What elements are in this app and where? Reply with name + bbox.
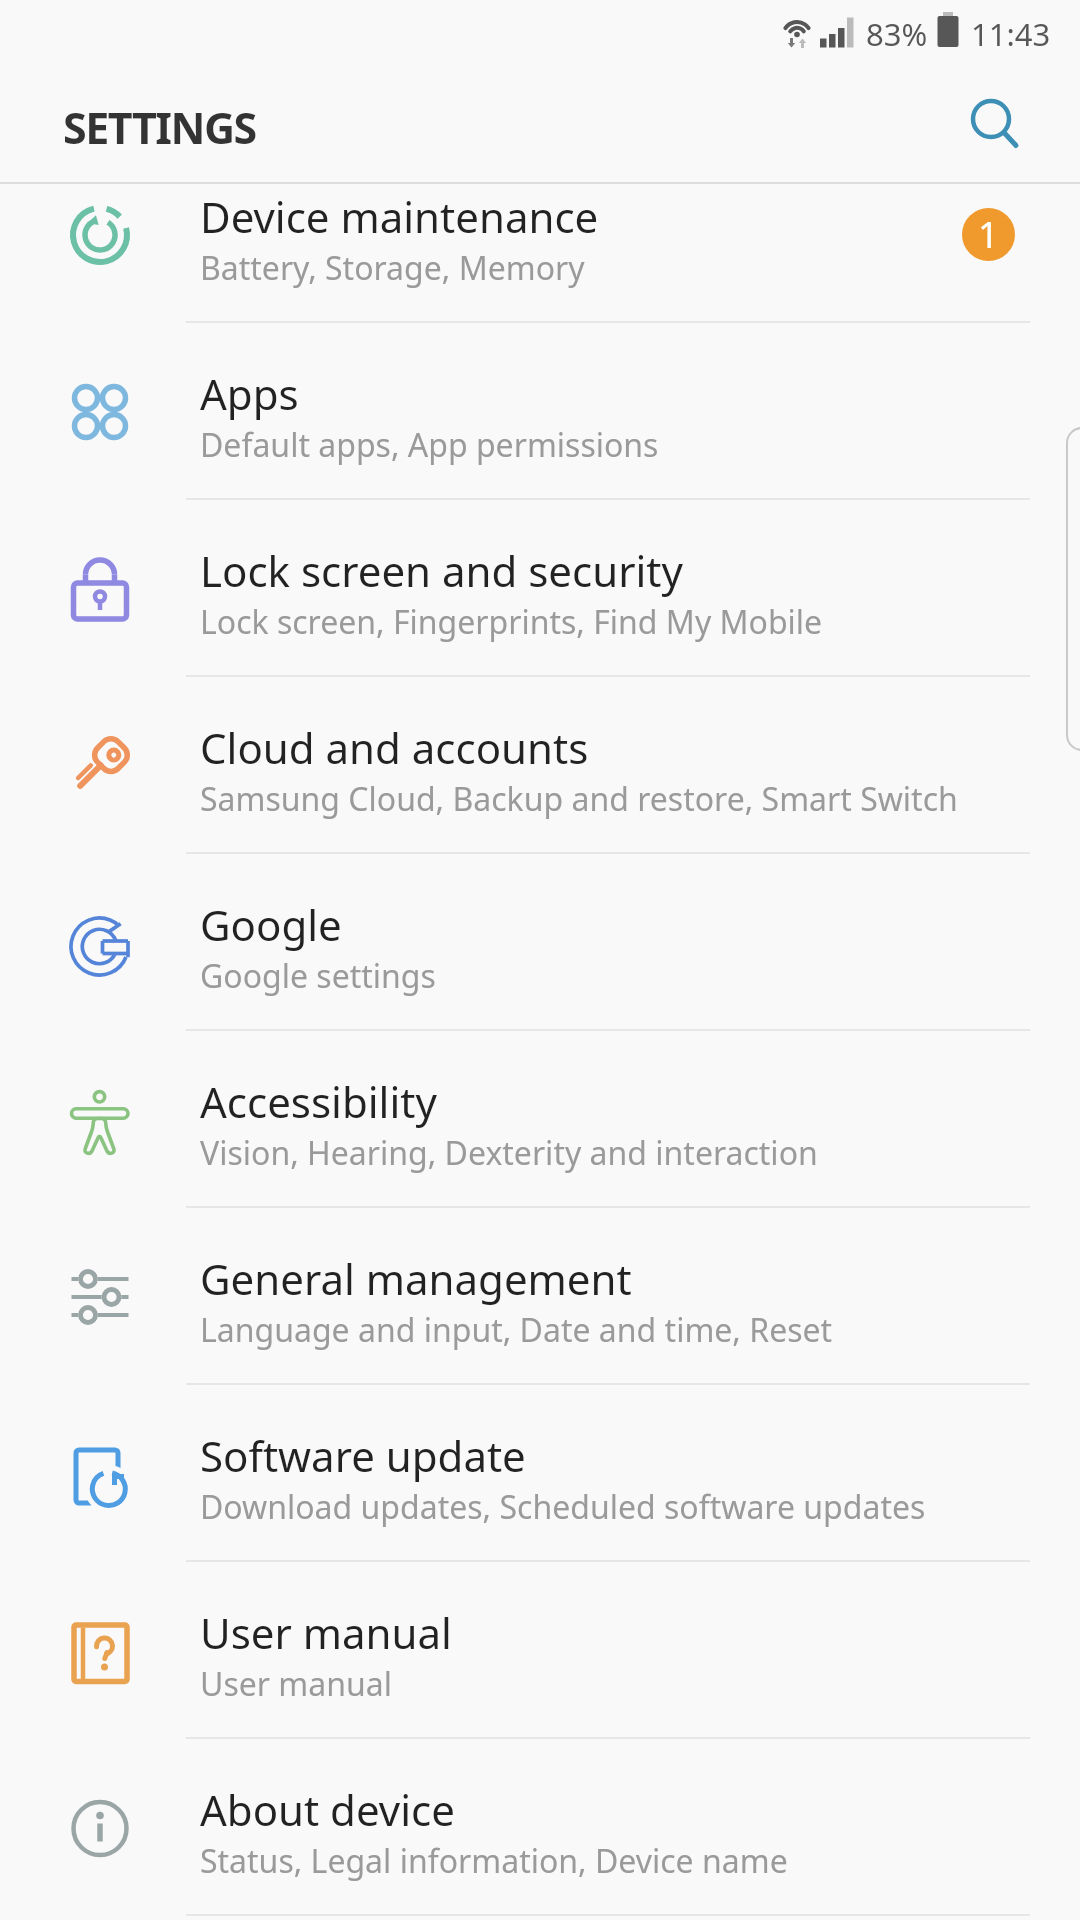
staticText: 1 [978, 210, 999, 259]
staticText: 11:43 [971, 13, 1051, 55]
staticText: Lock screen and security [200, 542, 683, 599]
staticText: Device maintenance [200, 188, 599, 245]
button[interactable]: Device maintenance [0, 146, 1080, 323]
button[interactable]: Lock screen and security [0, 500, 1080, 677]
staticText: Status, Legal information, Device name [200, 1839, 788, 1883]
staticText: Apps [200, 365, 299, 422]
staticText: Software update [200, 1427, 526, 1484]
staticText: Download updates, Scheduled software upd… [200, 1485, 926, 1529]
button[interactable]: Cloud and accounts [0, 677, 1080, 854]
staticText: Google settings [200, 954, 436, 998]
staticText: Samsung Cloud, Backup and restore, Smart… [200, 777, 958, 821]
button[interactable]: Accessibility [0, 1031, 1080, 1208]
staticText: User manual [200, 1604, 452, 1661]
button[interactable]: Google [0, 854, 1080, 1031]
staticText: Cloud and accounts [200, 719, 589, 776]
button[interactable]: About device [0, 1739, 1080, 1916]
staticText: 83% [866, 13, 928, 55]
staticText: Google [200, 896, 342, 953]
button[interactable]: General management [0, 1208, 1080, 1385]
staticText: About device [200, 1781, 455, 1838]
staticText: SETTINGS [63, 98, 256, 157]
staticText: Battery, Storage, Memory [200, 246, 585, 290]
button[interactable] [965, 93, 1021, 149]
staticText: Language and input, Date and time, Reset [200, 1308, 833, 1352]
button[interactable]: Apps [0, 323, 1080, 500]
staticText: Vision, Hearing, Dexterity and interacti… [200, 1131, 818, 1175]
staticText: Lock screen, Fingerprints, Find My Mobil… [200, 600, 823, 644]
button[interactable]: Software update [0, 1385, 1080, 1562]
staticText: Accessibility [200, 1073, 437, 1130]
staticText: General management [200, 1250, 632, 1307]
staticText: Default apps, App permissions [200, 423, 659, 467]
button[interactable]: User manual [0, 1562, 1080, 1739]
staticText: User manual [200, 1662, 392, 1706]
